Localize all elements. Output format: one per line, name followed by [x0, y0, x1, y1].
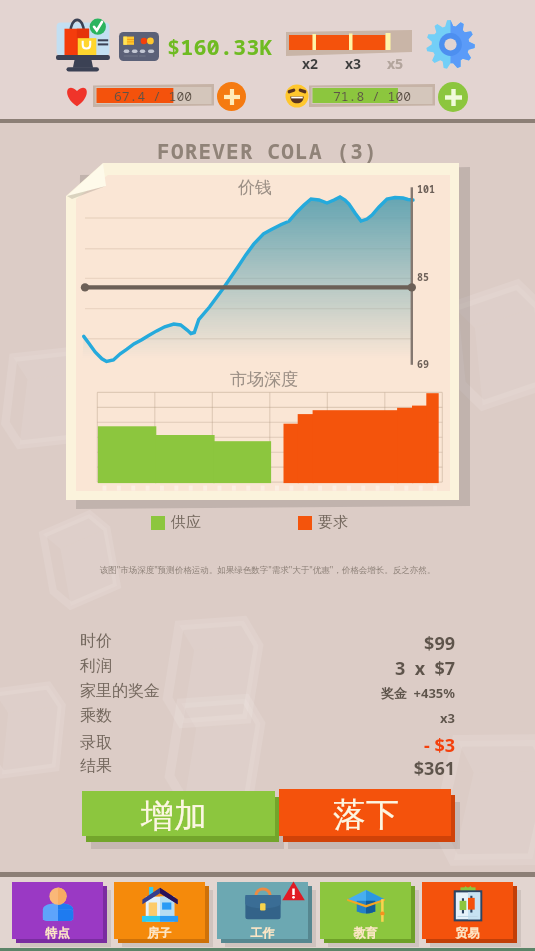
staticText: - $3 — [200, 733, 455, 758]
staticText: 71.8 / 100 — [333, 87, 412, 105]
staticText: 工作 — [217, 925, 308, 940]
staticText: 结果 — [80, 756, 112, 776]
staticText: 供应 — [171, 513, 201, 532]
staticText: x3 — [200, 709, 455, 727]
staticText: 85 — [417, 270, 429, 284]
button[interactable]: Add health — [217, 82, 246, 111]
staticText: $99 — [200, 631, 455, 656]
staticText: x3 — [345, 54, 362, 73]
staticText: 价钱 — [238, 177, 272, 198]
staticText: 时价 — [80, 631, 112, 651]
button[interactable]: 工作 — [217, 882, 316, 945]
staticText: 101 — [417, 182, 435, 196]
staticText: 落下 — [333, 794, 399, 836]
staticText: 3 x $7 — [200, 656, 455, 681]
button[interactable]: 贸易 — [422, 882, 521, 945]
button[interactable]: 落下 — [279, 789, 461, 847]
staticText: 贸易 — [422, 925, 513, 940]
button[interactable]: 房子 — [114, 882, 213, 945]
staticText: 增加 — [141, 795, 207, 837]
staticText: 录取 — [80, 733, 112, 753]
staticText: 利润 — [80, 656, 112, 676]
staticText: 家里的奖金 — [80, 681, 160, 701]
staticText: 该图"市场深度"预测价格运动。如果绿色数字"需求"大于"优惠"，价格会增长。反之… — [0, 564, 535, 576]
staticText: 特点 — [12, 925, 103, 940]
button[interactable]: 特点 — [12, 882, 111, 945]
staticText: 市场深度 — [230, 369, 298, 390]
staticText: FOREVER COLA (3) — [0, 137, 535, 166]
staticText: 教育 — [320, 925, 411, 940]
staticText: x5 — [387, 54, 404, 73]
staticText: 要求 — [318, 513, 348, 532]
staticText: 奖金 +435% — [200, 684, 455, 702]
button[interactable]: Settings — [424, 18, 477, 71]
staticText: $160.33K — [167, 31, 273, 61]
staticText: 69 — [417, 357, 429, 371]
button[interactable]: Add happiness — [438, 82, 468, 112]
staticText: 67.4 / 100 — [114, 87, 193, 105]
staticText: $361 — [200, 756, 455, 781]
staticText: x2 — [302, 54, 319, 73]
staticText: 房子 — [114, 925, 205, 940]
staticText: 乘数 — [80, 706, 112, 726]
button[interactable]: 教育 — [320, 882, 419, 945]
button[interactable]: 增加 — [82, 791, 284, 849]
